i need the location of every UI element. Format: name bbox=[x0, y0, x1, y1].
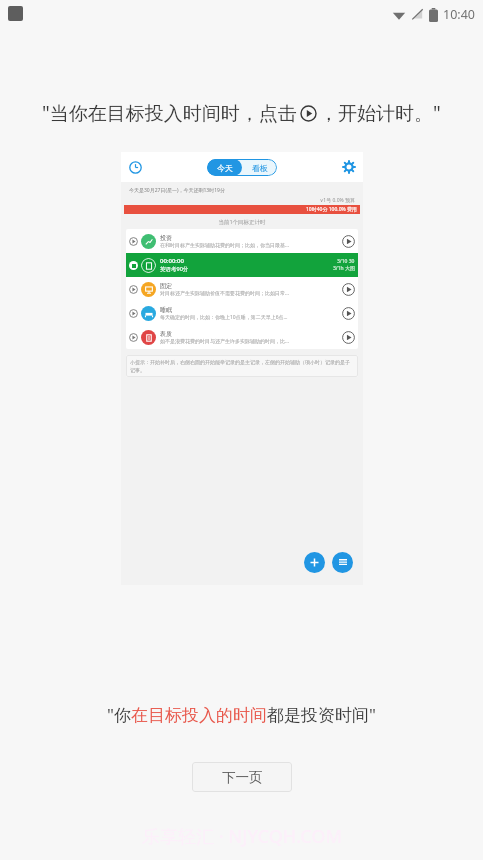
staticText: "你在目标投入的时间都是投资时间" bbox=[107, 703, 376, 726]
button[interactable]: 下一页 bbox=[192, 762, 292, 792]
staticText: 如不是浪费花费的时目与还产生许多实际辅助的时间，比… bbox=[160, 338, 289, 345]
staticText: 下一页 bbox=[222, 769, 263, 786]
button[interactable]: Add bbox=[304, 552, 325, 573]
staticText: 投资 bbox=[160, 234, 172, 242]
staticText: 睡眠 bbox=[160, 306, 172, 314]
button[interactable]: 今天 bbox=[207, 159, 242, 176]
button[interactable]: 固定 bbox=[126, 277, 358, 301]
button[interactable]: 表质 bbox=[126, 325, 358, 349]
staticText: "当你在目标投入时间时，点击 bbox=[42, 100, 297, 126]
staticText: 看板 bbox=[252, 163, 268, 173]
staticText: 每天确定的时间，比如：你晚上10点睡，第二天早上6点… bbox=[160, 314, 288, 321]
staticText: ，开始计时。" bbox=[319, 100, 441, 126]
button[interactable]: 00:00:00 bbox=[126, 253, 358, 277]
staticText: 在和时目标产生实际辅助花费的时间；比如，你当日最基… bbox=[160, 242, 289, 249]
button[interactable]: Settings bbox=[343, 161, 355, 173]
staticText: 小提示：开始补时后，右侧右圆的开始能举记录的是主记录，左侧的开始辅助（项小时）记… bbox=[130, 359, 354, 373]
staticText: 今天是30月27日(星一)，今天还剩13时19分 bbox=[129, 187, 225, 194]
staticText: 10:40 bbox=[443, 6, 475, 23]
staticText: 英语考90分 bbox=[160, 265, 189, 273]
staticText: 3/1h 大图 bbox=[333, 265, 355, 272]
staticText: 3/10 30 bbox=[337, 258, 355, 265]
button[interactable]: 睡眠 bbox=[126, 301, 358, 325]
staticText: 固定 bbox=[160, 282, 172, 290]
button[interactable]: 投资 bbox=[126, 229, 358, 253]
button[interactable]: Menu bbox=[332, 552, 353, 573]
staticText: 对目标还产生实际辅助价值不需要花费的时间；比如日常… bbox=[160, 290, 289, 297]
button[interactable]: History bbox=[129, 161, 142, 174]
staticText: ∨1号 0.0% 预算 bbox=[121, 197, 355, 204]
staticText: 表质 bbox=[160, 330, 172, 338]
button[interactable]: 看板 bbox=[242, 159, 277, 176]
staticText: 当前1个目标正计时 bbox=[121, 218, 363, 226]
staticText: 今天 bbox=[217, 163, 233, 173]
staticText: 10时40分 100.0% 费用 bbox=[306, 206, 357, 213]
staticText: 00:00:00 bbox=[160, 257, 184, 265]
